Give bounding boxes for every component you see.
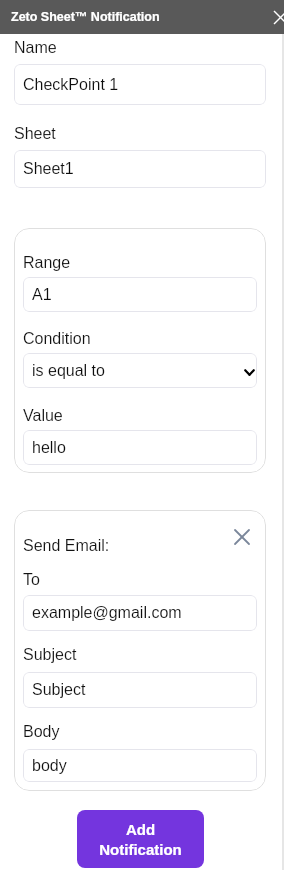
staticText: CheckPoint 1 <box>23 76 119 94</box>
staticText: Sheet1 <box>23 160 74 178</box>
button[interactable]: CheckPoint 1 <box>14 64 266 105</box>
staticText: A1 <box>32 286 52 304</box>
button[interactable]: Add Notification <box>77 810 204 868</box>
button[interactable]: body <box>23 749 257 782</box>
button[interactable]: example@gmail.com <box>23 595 257 631</box>
button[interactable]: Close <box>262 5 284 29</box>
button[interactable]: Remove email action <box>231 526 253 548</box>
staticText: Name <box>14 39 57 57</box>
button[interactable]: is equal to <box>23 353 257 388</box>
staticText: Range <box>23 254 71 272</box>
staticText: Add Notification <box>99 821 182 858</box>
button[interactable]: A1 <box>23 277 257 312</box>
staticText: example@gmail.com <box>32 604 182 622</box>
staticText: body <box>32 757 67 775</box>
staticText: Subject <box>23 646 77 664</box>
button[interactable]: Subject <box>23 672 257 708</box>
staticText: Value <box>23 407 63 425</box>
staticText: Body <box>23 723 60 741</box>
staticText: Subject <box>32 681 86 699</box>
staticText: Send Email: <box>23 537 110 555</box>
button[interactable]: Sheet1 <box>14 150 266 188</box>
staticText: Condition <box>23 330 91 348</box>
staticText: To <box>23 571 40 589</box>
staticText: hello <box>32 439 66 457</box>
button[interactable]: hello <box>23 430 257 465</box>
staticText: Zeto Sheet™ Notification <box>11 10 160 24</box>
staticText: is equal to <box>32 362 105 380</box>
staticText: Sheet <box>14 125 56 143</box>
